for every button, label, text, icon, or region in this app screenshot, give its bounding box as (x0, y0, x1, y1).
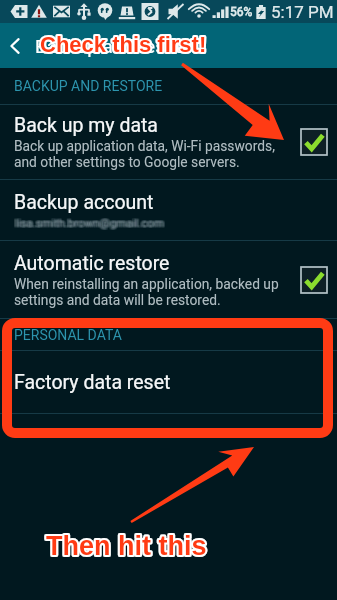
staticText: Backup and reset (35, 35, 182, 57)
staticText: Factory data reset (14, 371, 171, 394)
button[interactable]: Backup account (0, 180, 337, 240)
staticText: Back up my data (14, 114, 158, 137)
button[interactable]: Navigate up (0, 23, 30, 68)
staticText: Back up application data, Wi-Fi password… (14, 138, 275, 170)
staticText: Backup account (14, 191, 154, 214)
staticText: PERSONAL DATA (14, 327, 122, 343)
staticText: 5:17 PM (271, 2, 334, 22)
button[interactable]: Factory data reset (0, 351, 337, 413)
button[interactable]: Back up my data (0, 105, 337, 179)
staticText: Automatic restore (14, 252, 170, 275)
button[interactable]: Automatic restore (0, 241, 337, 318)
staticText: When reinstalling an application, backed… (14, 276, 279, 308)
staticText: BACKUP AND RESTORE (14, 78, 163, 94)
staticText: 56% (230, 5, 253, 19)
